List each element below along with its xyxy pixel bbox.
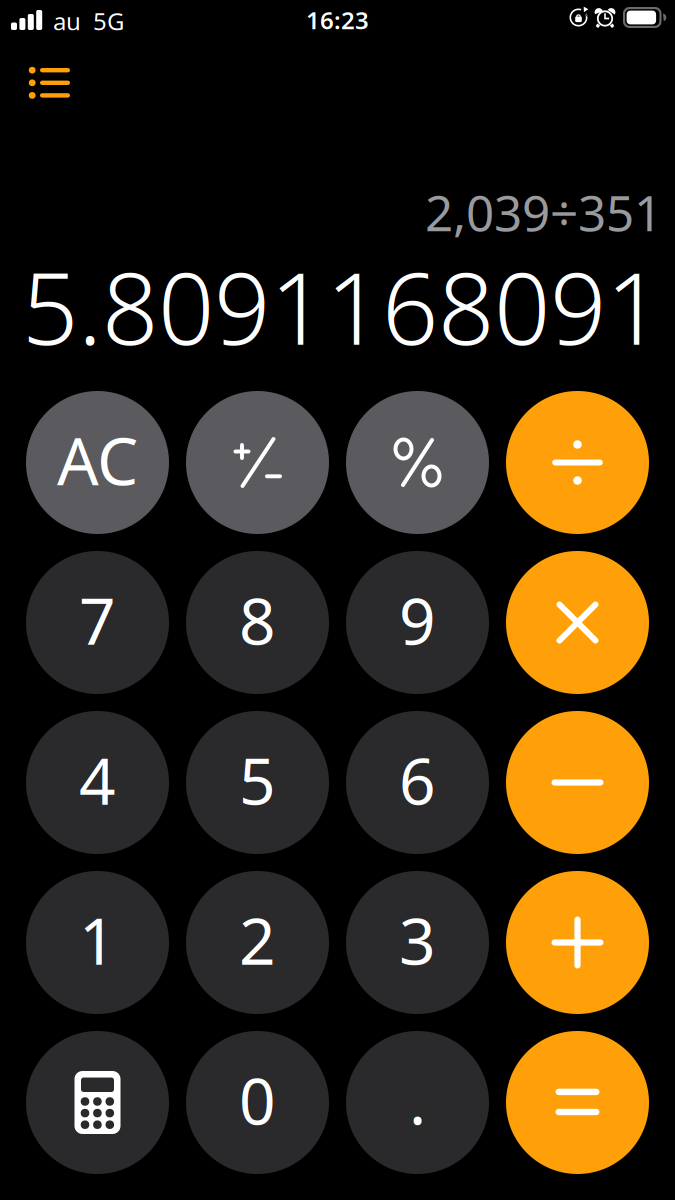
- button[interactable]: Percent: [346, 391, 489, 534]
- button[interactable]: Decimal point: [346, 1031, 489, 1174]
- staticText: 16:23: [306, 4, 369, 36]
- staticText: 4: [79, 737, 116, 822]
- staticText: 6: [399, 737, 436, 822]
- staticText: 5: [239, 737, 276, 822]
- button[interactable]: Plus Minus: [186, 391, 329, 534]
- button[interactable]: 2: [186, 871, 329, 1014]
- button[interactable]: 8: [186, 551, 329, 694]
- button[interactable]: 4: [26, 711, 169, 854]
- button[interactable]: Multiply: [506, 551, 649, 694]
- button[interactable]: Divide: [506, 391, 649, 534]
- staticText: 3: [399, 897, 436, 982]
- staticText: 8: [239, 577, 276, 662]
- staticText: AC: [57, 417, 138, 503]
- button[interactable]: 6: [346, 711, 489, 854]
- button[interactable]: 9: [346, 551, 489, 694]
- button[interactable]: Plus: [506, 871, 649, 1014]
- button[interactable]: AC: [26, 391, 169, 534]
- staticText: au: [53, 5, 81, 37]
- staticText: 7: [79, 577, 116, 662]
- staticText: 9: [399, 577, 436, 662]
- button[interactable]: History: [0, 42, 94, 118]
- button[interactable]: 7: [26, 551, 169, 694]
- staticText: 0: [239, 1057, 276, 1142]
- staticText: 5G: [93, 5, 124, 37]
- button[interactable]: Equals: [506, 1031, 649, 1174]
- button[interactable]: 0: [186, 1031, 329, 1174]
- staticText: 1: [79, 897, 116, 982]
- button[interactable]: 3: [346, 871, 489, 1014]
- staticText: .: [409, 1057, 426, 1142]
- staticText: 2,039÷351: [425, 179, 662, 245]
- button[interactable]: Minus: [506, 711, 649, 854]
- button[interactable]: 1: [26, 871, 169, 1014]
- staticText: 2: [239, 897, 276, 982]
- button[interactable]: Calculator: [26, 1031, 169, 1174]
- button[interactable]: 5: [186, 711, 329, 854]
- staticText: 5.8091168091: [22, 241, 662, 372]
